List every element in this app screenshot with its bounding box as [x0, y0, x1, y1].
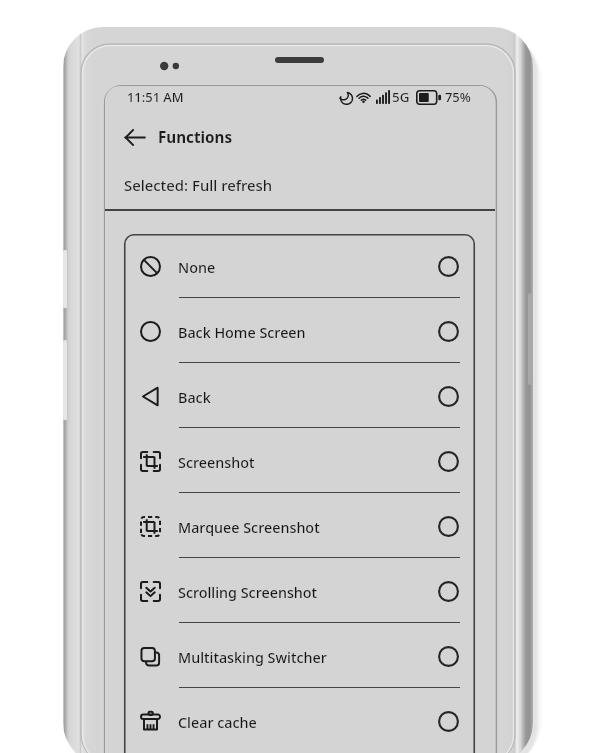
staticText: 11:51 AM	[127, 88, 184, 106]
staticText: Clear cache	[178, 713, 257, 733]
staticText: Back Home Screen	[178, 323, 306, 343]
button[interactable]: Screenshot	[124, 429, 475, 494]
button[interactable]: Marquee Screenshot	[124, 494, 475, 559]
button[interactable]: None	[124, 234, 475, 299]
button[interactable]: Scrolling Screenshot	[124, 559, 475, 624]
staticText: Back	[178, 388, 211, 408]
staticText: 5G	[392, 88, 410, 106]
button[interactable]: Back	[124, 364, 475, 429]
button[interactable]: Clear cache	[124, 689, 475, 753]
button[interactable]: Multitasking Switcher	[124, 624, 475, 689]
staticText: Multitasking Switcher	[178, 648, 327, 668]
staticText: Selected: Full refresh	[124, 175, 273, 195]
staticText: Scrolling Screenshot	[178, 583, 318, 603]
staticText: Functions	[158, 127, 233, 148]
button[interactable]: Back Home Screen	[124, 299, 475, 364]
staticText: Marquee Screenshot	[178, 518, 320, 538]
staticText: 75%	[445, 88, 471, 106]
button[interactable]: Back	[118, 120, 152, 154]
staticText: None	[178, 258, 216, 278]
staticText: Screenshot	[178, 453, 255, 473]
